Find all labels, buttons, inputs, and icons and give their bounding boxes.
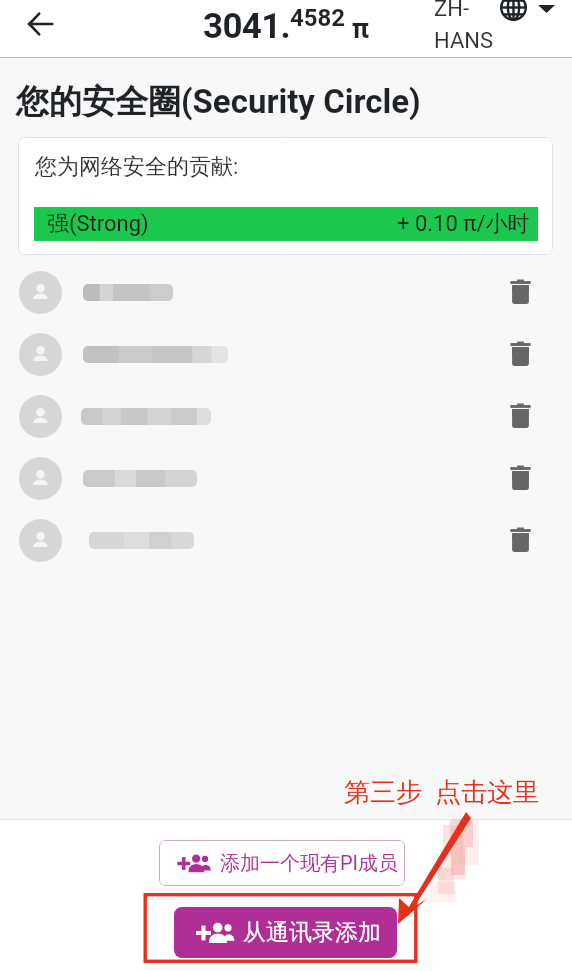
button[interactable]: Delete <box>0 447 572 509</box>
staticText: ZH-HANS <box>434 0 494 54</box>
staticText: 添加一个现有PI成员 <box>220 851 399 876</box>
button[interactable]: 从通讯录添加 <box>174 907 397 958</box>
staticText: 3041.4582 π <box>203 4 370 46</box>
button[interactable]: Delete <box>0 509 572 571</box>
staticText: 第三步 点击这里 <box>344 776 539 809</box>
button[interactable]: Delete <box>500 332 544 376</box>
button[interactable]: Delete <box>500 394 544 438</box>
staticText: 强(Strong) <box>47 210 149 238</box>
button[interactable]: Delete <box>0 323 572 385</box>
button[interactable]: Delete <box>500 456 544 500</box>
staticText: + 0.10 π/小时 <box>397 210 530 238</box>
staticText: 从通讯录添加 <box>243 918 381 947</box>
staticText: 您为网络安全的贡献: <box>35 153 239 181</box>
button[interactable]: Delete <box>0 385 572 447</box>
button[interactable]: ZH-HANS <box>0 0 572 58</box>
staticText: 您的安全圈(Security Circle) <box>16 81 421 123</box>
button[interactable]: Delete <box>500 518 544 562</box>
button[interactable]: 添加一个现有PI成员 <box>159 840 405 886</box>
button[interactable]: Delete <box>500 270 544 314</box>
button[interactable]: Back <box>18 2 62 46</box>
button[interactable]: Delete <box>0 261 572 323</box>
